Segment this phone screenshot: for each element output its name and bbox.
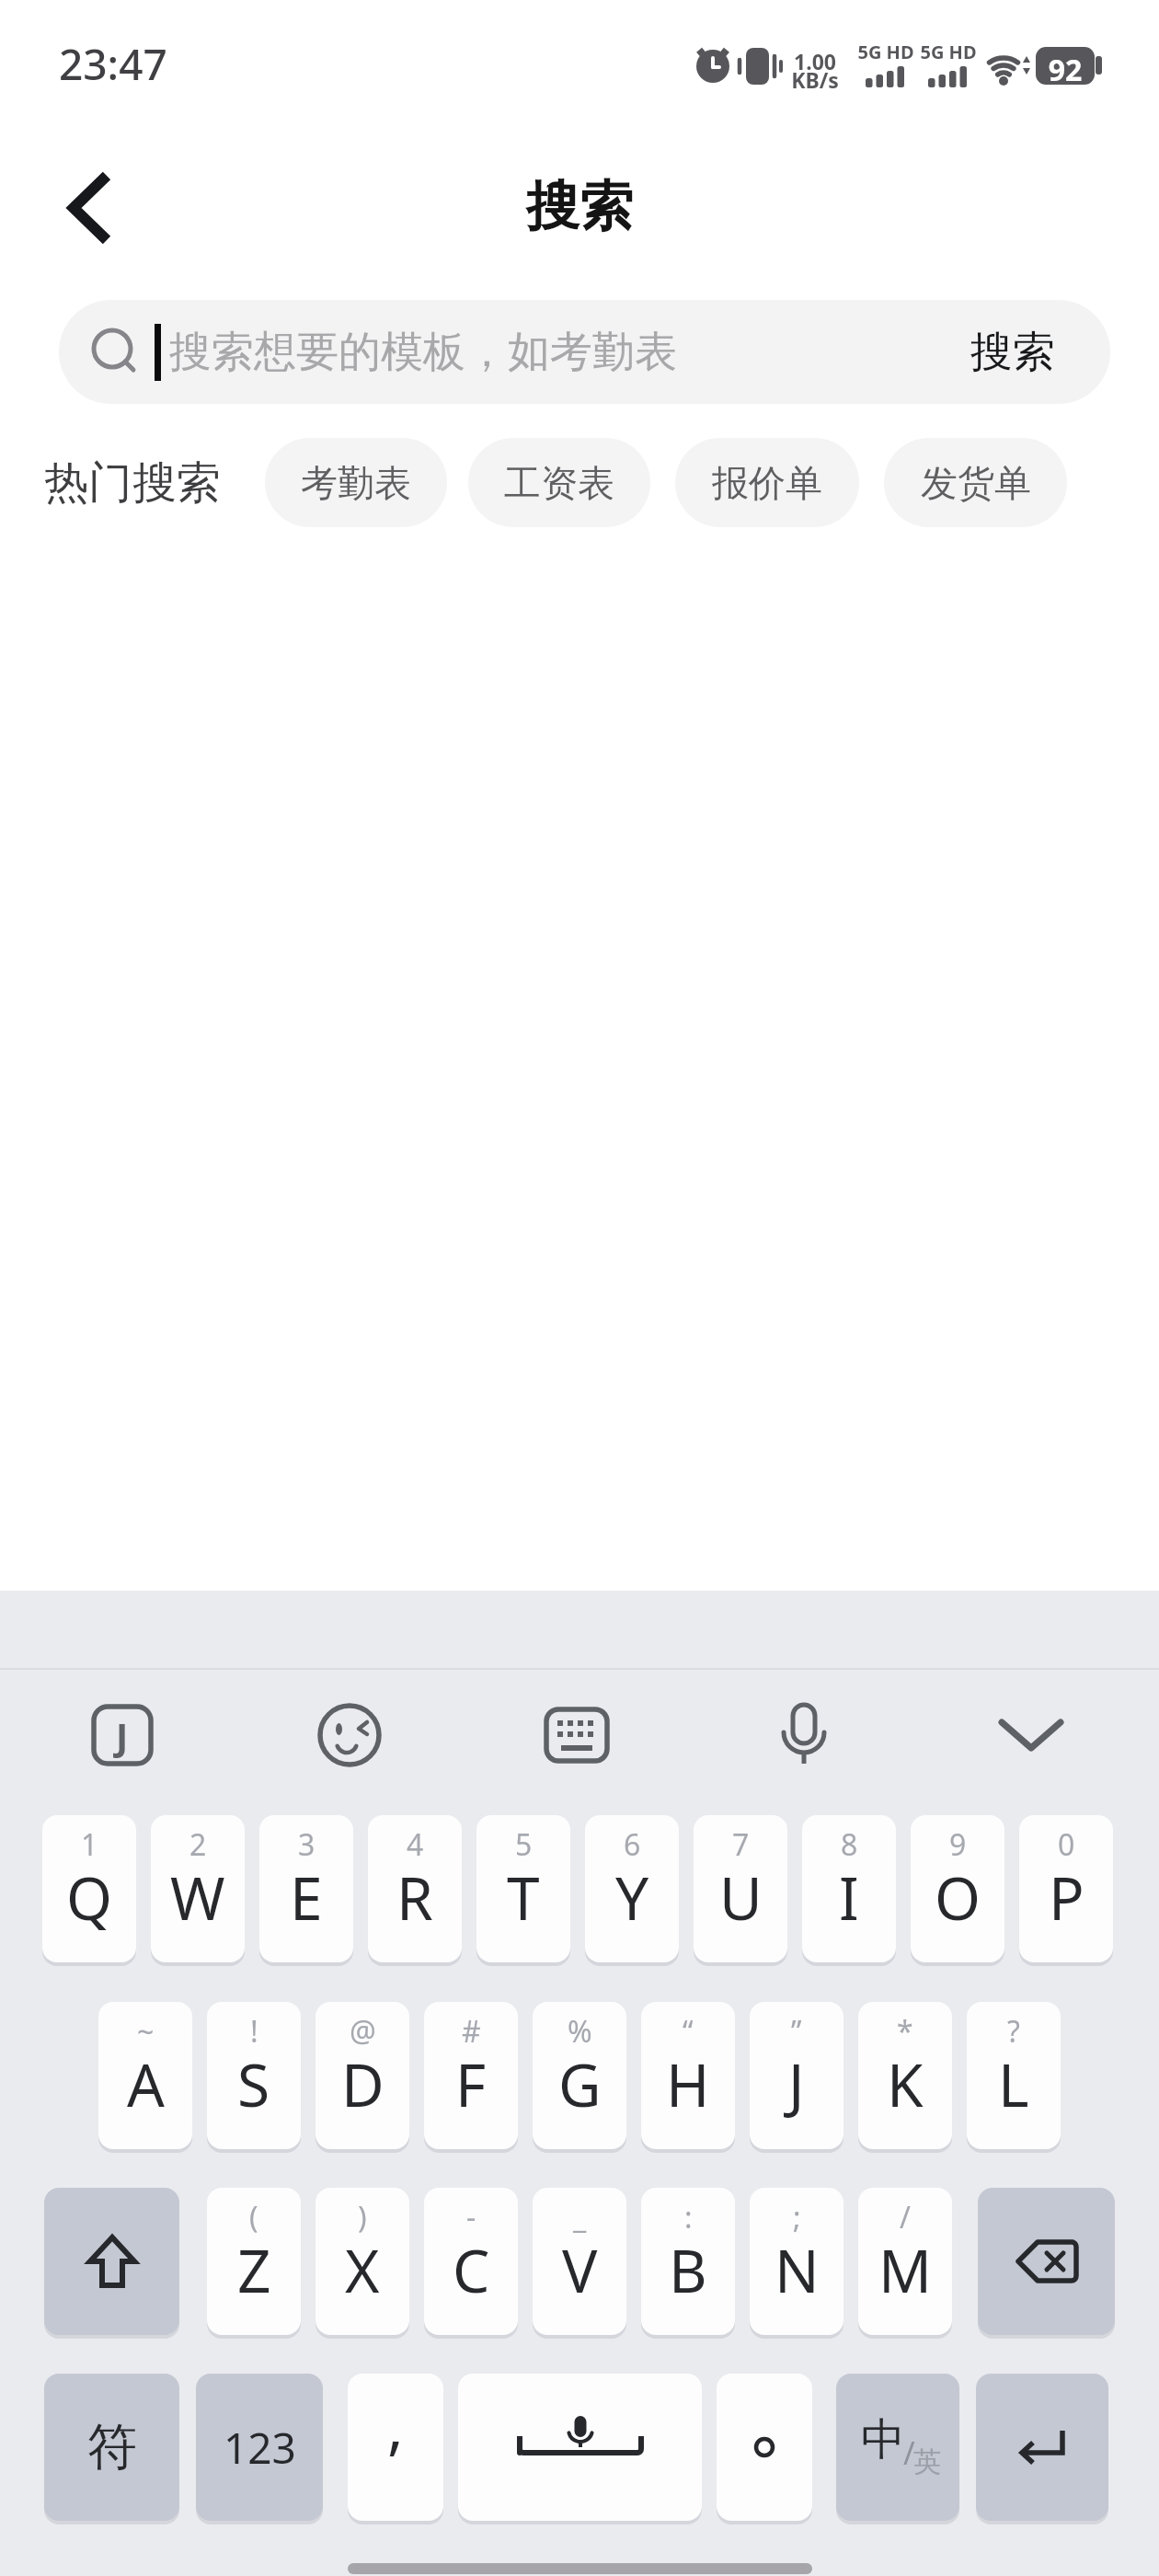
staticText: K (887, 2044, 924, 2124)
staticText: _ (573, 2197, 587, 2237)
button[interactable]: 1 (42, 1815, 136, 1962)
button[interactable]: : (641, 2188, 735, 2335)
staticText: Y (615, 1857, 649, 1938)
button[interactable] (994, 1698, 1068, 1772)
staticText: C (453, 2230, 490, 2310)
staticText: 搜索想要的模板，如考勤表 (169, 326, 677, 379)
staticText: 搜索 (970, 326, 1055, 379)
staticText: N (775, 2230, 820, 2310)
staticText: ” (791, 2011, 802, 2052)
staticText: V (562, 2230, 598, 2310)
button[interactable]: 考勤表 (265, 438, 447, 527)
staticText: ; (793, 2197, 801, 2237)
staticText: 考勤表 (301, 460, 411, 506)
staticText: 搜索 (526, 173, 633, 240)
button[interactable]: ~ (98, 2002, 192, 2149)
staticText: 3 (298, 1824, 316, 1865)
button[interactable] (37, 147, 138, 267)
staticText: M (878, 2230, 933, 2310)
button[interactable]: 123 (196, 2374, 323, 2521)
staticText: 5 (515, 1824, 533, 1865)
button[interactable]: 8 (802, 1815, 896, 1962)
button[interactable]: 中 (836, 2374, 959, 2521)
button[interactable] (458, 2374, 702, 2521)
staticText: ? (1007, 2011, 1020, 2052)
button[interactable]: * (858, 2002, 952, 2149)
button[interactable]: ? (967, 2002, 1061, 2149)
staticText: 中 (861, 2412, 905, 2467)
button[interactable]: 符 (44, 2374, 179, 2521)
staticText: B (669, 2230, 707, 2310)
button[interactable]: - (424, 2188, 518, 2335)
staticText: J (116, 1710, 129, 1760)
staticText: 6 (624, 1824, 641, 1865)
staticText: 23:47 (59, 35, 167, 93)
staticText: F (455, 2044, 487, 2124)
staticText: 符 (87, 2416, 137, 2478)
staticText: 0 (1058, 1824, 1075, 1865)
staticText: 8 (841, 1824, 858, 1865)
button[interactable] (313, 1698, 386, 1772)
button[interactable] (767, 1698, 841, 1772)
button[interactable]: 4 (368, 1815, 462, 1962)
staticText: 2 (189, 1824, 207, 1865)
button[interactable]: _ (533, 2188, 626, 2335)
staticText: 1.00 (778, 47, 852, 75)
staticText: , (387, 2384, 404, 2467)
button[interactable]: ” (750, 2002, 843, 2149)
staticText: H (666, 2044, 710, 2124)
button[interactable]: 发货单 (884, 438, 1067, 527)
button[interactable]: / (858, 2188, 952, 2335)
staticText: ! (250, 2011, 258, 2052)
button[interactable]: 9 (911, 1815, 1004, 1962)
staticText: 123 (224, 2419, 296, 2477)
staticText: ( (249, 2197, 258, 2237)
staticText: @ (350, 2011, 376, 2052)
button[interactable]: 7 (694, 1815, 787, 1962)
button[interactable]: # (424, 2002, 518, 2149)
staticText: “ (683, 2011, 694, 2052)
staticText: D (341, 2044, 384, 2124)
button[interactable]: ( (207, 2188, 301, 2335)
button[interactable] (44, 2188, 179, 2335)
button[interactable]: 报价单 (675, 438, 859, 527)
staticText: ) (358, 2197, 367, 2237)
button[interactable]: 工资表 (468, 438, 650, 527)
button[interactable]: 搜索想要的模板，如考勤表 (59, 300, 1110, 404)
staticText: 报价单 (712, 460, 822, 506)
button[interactable]: ; (750, 2188, 843, 2335)
button[interactable]: 3 (259, 1815, 353, 1962)
button[interactable]: , (348, 2374, 443, 2521)
button[interactable]: 0 (1019, 1815, 1113, 1962)
button[interactable]: 6 (585, 1815, 679, 1962)
staticText: 9 (949, 1824, 967, 1865)
staticText: Z (237, 2230, 271, 2310)
button[interactable]: % (533, 2002, 626, 2149)
staticText: G (558, 2044, 602, 2124)
staticText: Q (66, 1857, 112, 1938)
staticText: 英 (913, 2444, 941, 2479)
button[interactable]: ) (316, 2188, 409, 2335)
staticText: X (345, 2230, 380, 2310)
button[interactable]: 5 (476, 1815, 570, 1962)
staticText: 工资表 (504, 460, 614, 506)
staticText: 4 (407, 1824, 424, 1865)
button[interactable] (976, 2374, 1108, 2521)
button[interactable] (978, 2188, 1115, 2335)
staticText: O (935, 1857, 981, 1938)
button[interactable]: @ (316, 2002, 409, 2149)
staticText: / (903, 2432, 915, 2474)
staticText: E (290, 1857, 323, 1938)
button[interactable]: ! (207, 2002, 301, 2149)
button[interactable]: 搜索 (958, 300, 1068, 404)
button[interactable]: 2 (151, 1815, 245, 1962)
staticText: * (897, 2011, 913, 2052)
button[interactable] (717, 2374, 812, 2521)
staticText: % (568, 2011, 592, 2052)
button[interactable] (540, 1698, 614, 1772)
staticText: U (719, 1857, 763, 1938)
button[interactable] (86, 1698, 159, 1772)
button[interactable]: “ (641, 2002, 735, 2149)
staticText: W (170, 1857, 225, 1938)
staticText: : (684, 2197, 693, 2237)
